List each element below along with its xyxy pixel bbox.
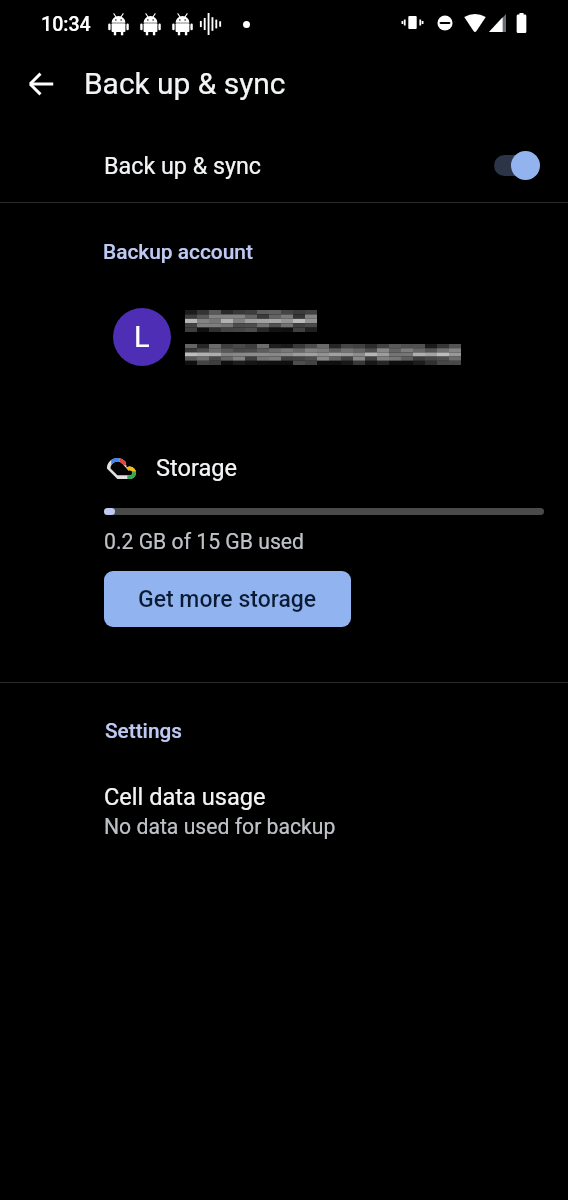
button[interactable]: L (0, 298, 568, 376)
button[interactable]: Back (17, 60, 65, 108)
staticText: Storage (156, 454, 238, 482)
staticText: 10:34 (41, 13, 91, 36)
staticText: Settings (105, 719, 182, 743)
staticText: No data used for backup (104, 814, 336, 839)
button[interactable]: Cell data usage (0, 781, 568, 849)
button[interactable]: Get more storage (104, 571, 351, 627)
staticText: Get more storage (138, 586, 317, 613)
staticText: Back up & sync (104, 152, 262, 179)
staticText: 0.2 GB of 15 GB used (104, 529, 305, 554)
staticText: Backup account (103, 240, 253, 264)
staticText: L (134, 320, 150, 354)
staticText: Cell data usage (104, 783, 266, 811)
button[interactable]: Back up & sync (0, 126, 568, 204)
staticText: Back up & sync (84, 66, 286, 101)
